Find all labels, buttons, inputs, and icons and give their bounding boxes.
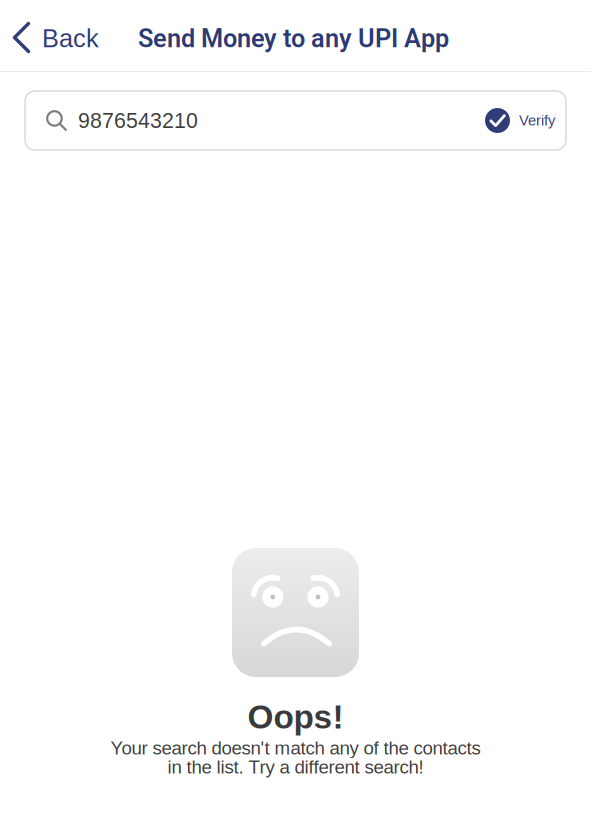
staticText: in the list. Try a different search! bbox=[167, 757, 423, 777]
staticText: Oops! bbox=[247, 698, 343, 736]
button[interactable]: Back bbox=[0, 22, 109, 55]
button[interactable]: Verify bbox=[475, 108, 566, 133]
button[interactable]: Send Money to any UPI App bbox=[109, 24, 461, 53]
staticText: Your search doesn't match any of the con… bbox=[110, 738, 480, 758]
staticText: Send Money to any UPI App bbox=[138, 24, 449, 53]
staticText: Back bbox=[42, 24, 99, 53]
staticText: 9876543210 bbox=[78, 109, 198, 132]
staticText: Verify bbox=[519, 112, 555, 129]
